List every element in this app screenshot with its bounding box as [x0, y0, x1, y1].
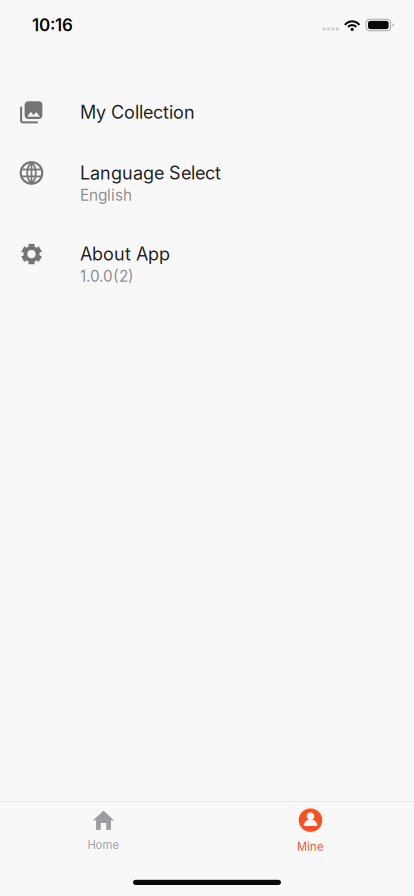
staticText: English: [80, 186, 132, 204]
button[interactable]: Language Select: [0, 143, 414, 224]
staticText: About App: [80, 243, 170, 265]
button[interactable]: About App: [0, 224, 414, 305]
staticText: Home: [87, 838, 119, 852]
button[interactable]: Mine: [207, 802, 414, 856]
button[interactable]: Home: [0, 802, 207, 856]
staticText: Language Select: [80, 162, 221, 184]
staticText: My Collection: [80, 101, 195, 123]
staticText: 1.0.0(2): [80, 267, 134, 285]
button[interactable]: My Collection: [0, 82, 414, 143]
staticText: Mine: [297, 840, 324, 853]
staticText: 10:16: [32, 15, 73, 35]
